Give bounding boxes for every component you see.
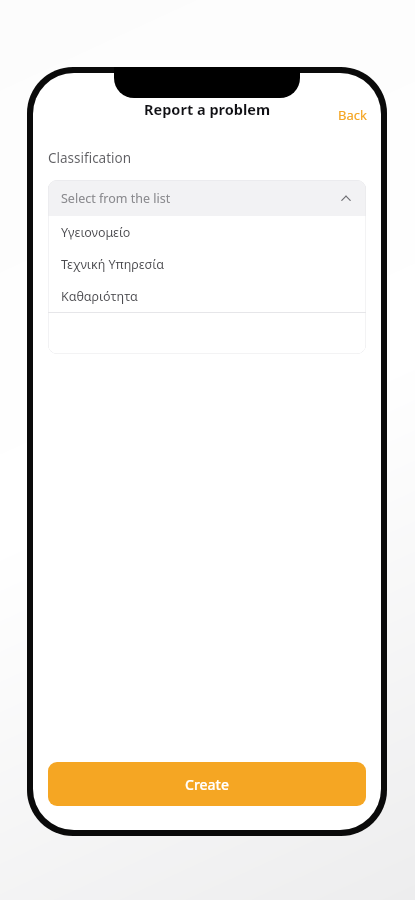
- staticText: Back: [338, 106, 367, 124]
- staticText: Classification: [48, 149, 132, 167]
- button[interactable]: Τεχνική Υπηρεσία: [48, 248, 366, 280]
- staticText: Report a problem: [144, 99, 271, 119]
- staticText: Create: [185, 775, 229, 794]
- button[interactable]: Υγειονομείο: [48, 216, 366, 248]
- button[interactable]: Καθαριότητα: [48, 280, 366, 312]
- other: Collapse list: [339, 191, 353, 205]
- staticText: Υγειονομείο: [61, 224, 131, 241]
- staticText: Select from the list: [61, 190, 339, 207]
- button[interactable]: Create: [48, 762, 366, 806]
- staticText: Τεχνική Υπηρεσία: [61, 256, 164, 273]
- button[interactable]: Back: [324, 100, 381, 130]
- staticText: Καθαριότητα: [61, 288, 138, 305]
- button[interactable]: Select from the list: [48, 180, 366, 216]
